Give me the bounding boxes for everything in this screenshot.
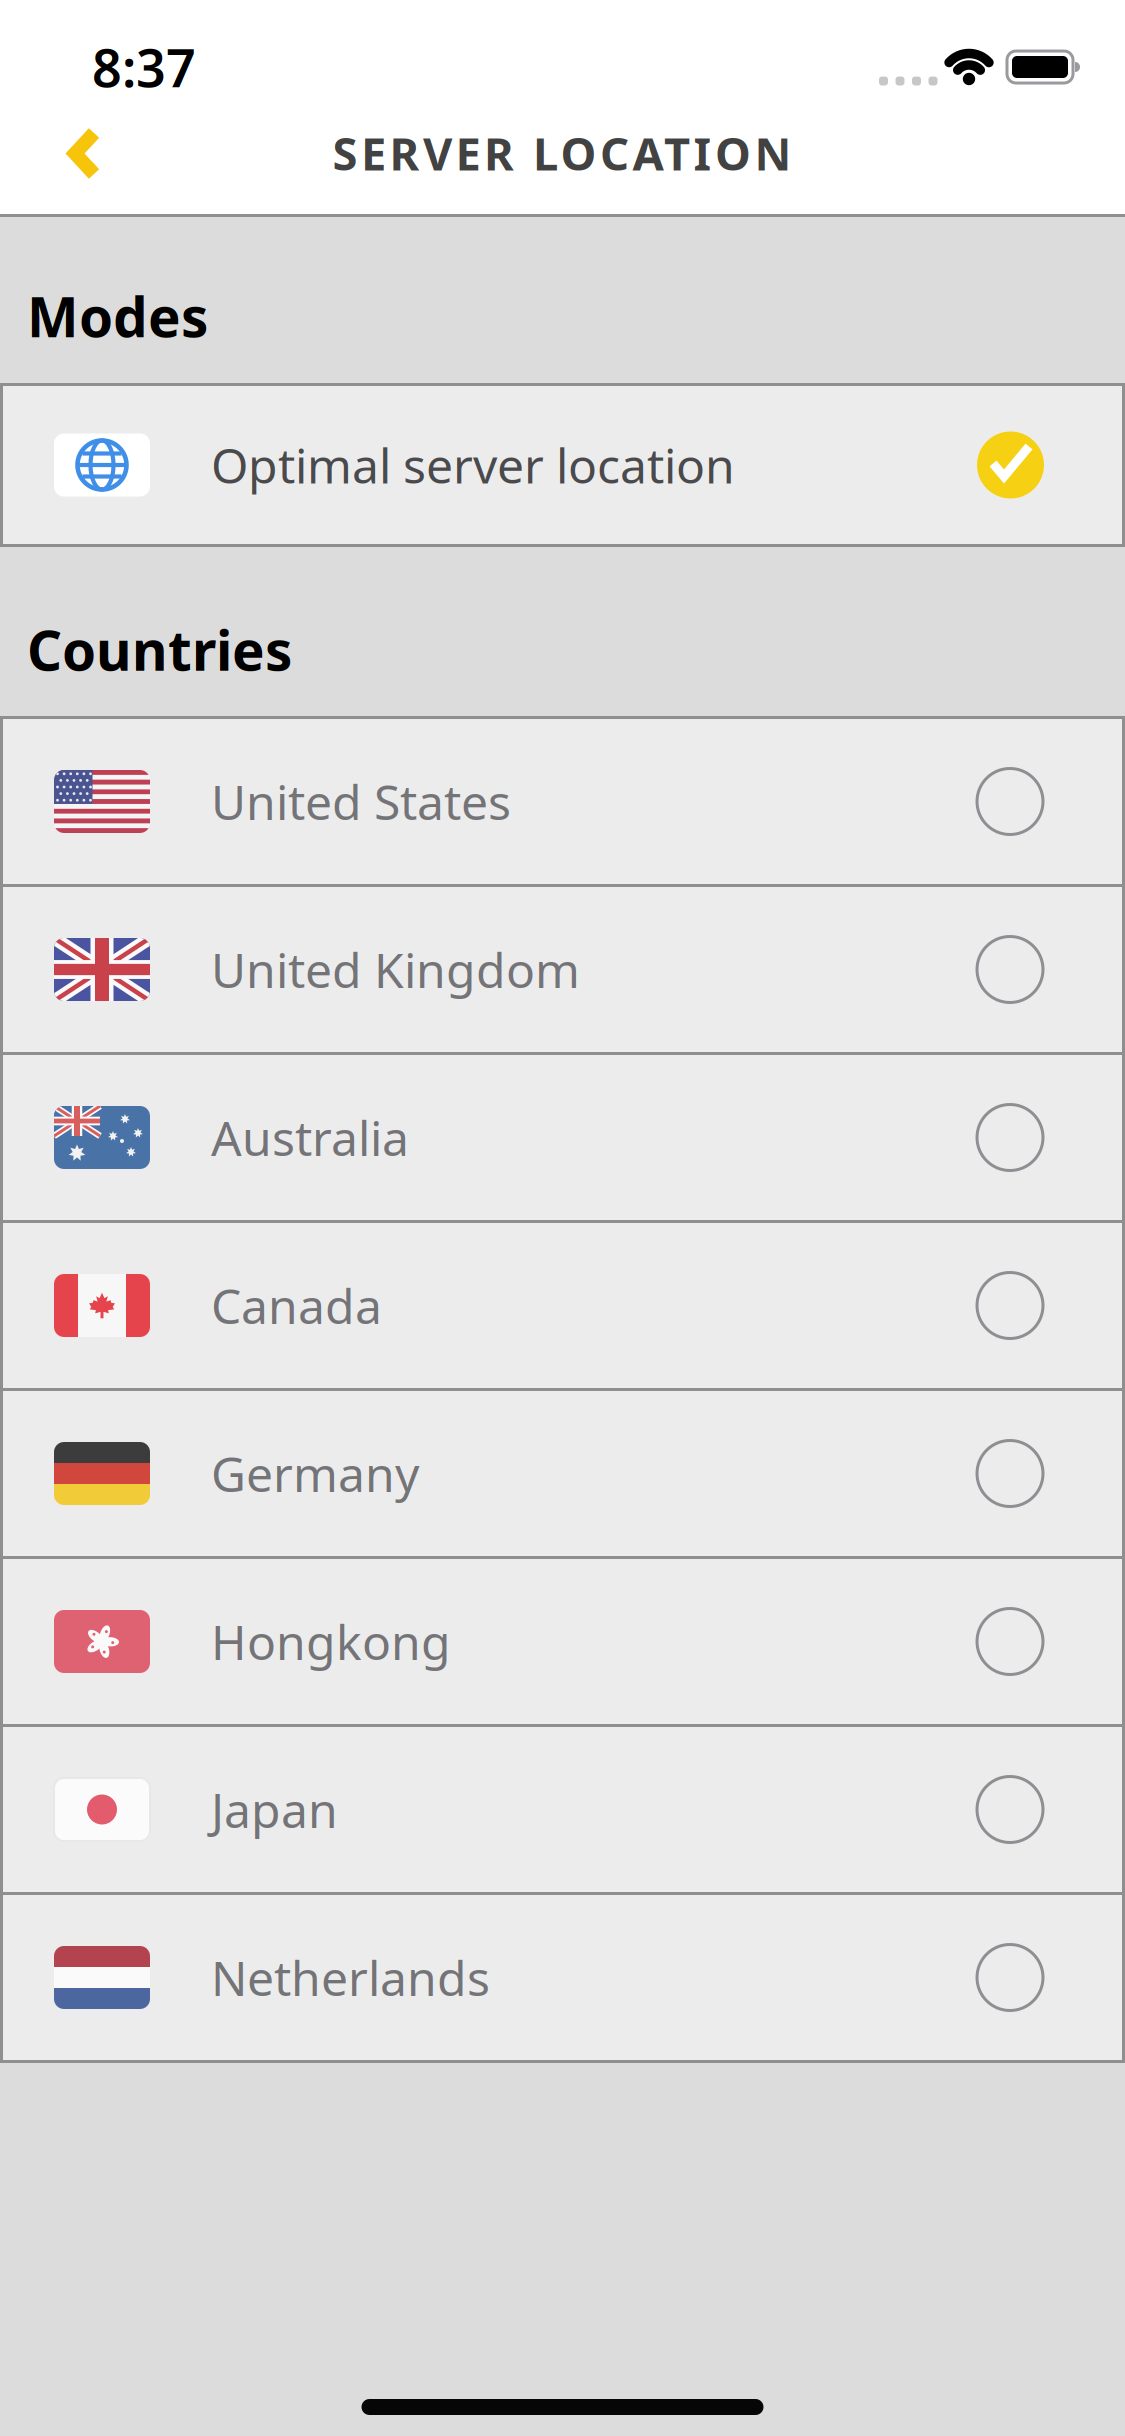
button[interactable]: United Kingdom [0,887,1125,1052]
button[interactable]: Netherlands [0,1895,1125,2060]
staticText: 8:37 [92,32,196,102]
staticText: Optimal server location [211,433,735,497]
button[interactable]: Canada [0,1223,1125,1388]
button[interactable]: Germany [0,1391,1125,1556]
staticText: SERVER LOCATION [332,123,791,183]
button[interactable]: Japan [0,1727,1125,1892]
button[interactable]: United States [0,719,1125,884]
button[interactable]: Optimal server location [0,386,1125,544]
staticText: Modes [27,280,208,352]
button[interactable]: Australia [0,1055,1125,1220]
button[interactable]: Hongkong [0,1559,1125,1724]
staticText: Japan [211,1778,338,1841]
staticText: Germany [211,1442,419,1505]
staticText: United Kingdom [211,938,580,1001]
button[interactable]: Back [60,123,120,183]
staticText: Australia [211,1106,409,1169]
staticText: United States [211,770,511,833]
staticText: Netherlands [211,1946,490,2009]
staticText: Hongkong [211,1610,451,1673]
staticText: Countries [27,613,292,686]
staticText: Canada [211,1274,382,1337]
